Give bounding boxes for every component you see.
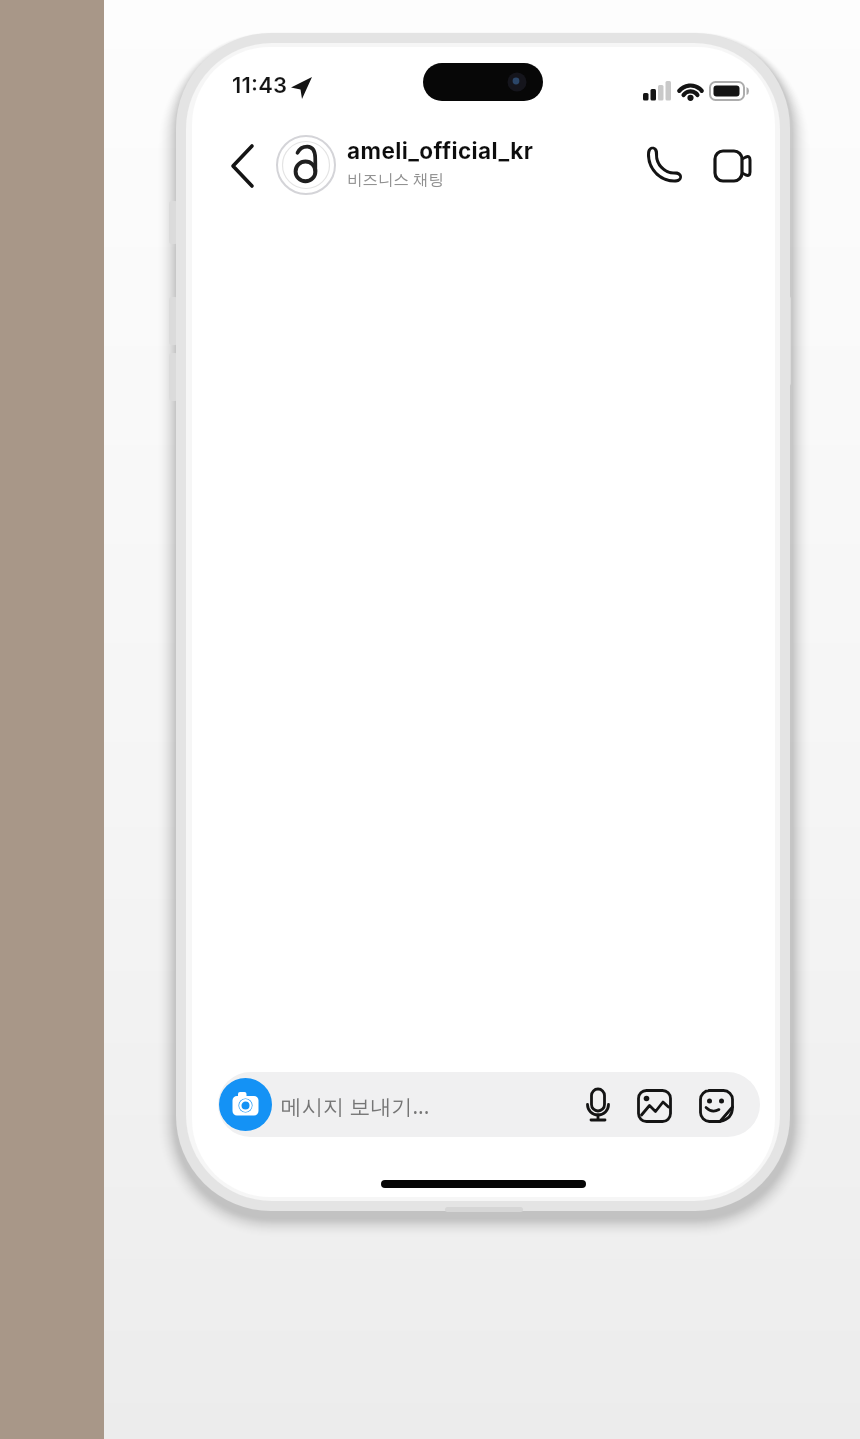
staticText: 비즈니스 채팅: [347, 168, 445, 189]
staticText: 11:43: [232, 72, 288, 99]
button[interactable]: [699, 1089, 735, 1125]
button[interactable]: [276, 135, 336, 195]
button[interactable]: [220, 140, 268, 192]
button[interactable]: [712, 146, 754, 188]
button[interactable]: [638, 144, 684, 190]
button[interactable]: [218, 1072, 760, 1137]
button[interactable]: [581, 1087, 617, 1123]
staticText: 메시지 보내기...: [281, 1092, 430, 1121]
button[interactable]: ameli_official_kr: [347, 137, 547, 193]
button[interactable]: [637, 1089, 673, 1125]
button[interactable]: [219, 1078, 272, 1131]
staticText: ameli_official_kr: [347, 137, 534, 164]
